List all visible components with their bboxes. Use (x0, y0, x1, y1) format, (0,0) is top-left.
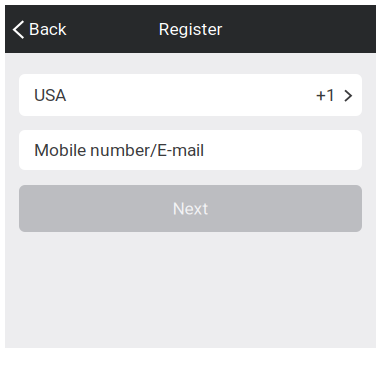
staticText: +1 (316, 85, 336, 105)
button[interactable]: USA (19, 74, 362, 116)
staticText: USA (34, 85, 66, 105)
staticText: Register (158, 19, 222, 39)
button[interactable]: Mobile number/E-mail (19, 130, 362, 170)
staticText: Mobile number/E-mail (34, 140, 204, 160)
button[interactable]: Next (19, 185, 362, 232)
staticText: Back (29, 19, 67, 39)
button[interactable]: Back (5, 5, 77, 53)
staticText: Next (172, 198, 208, 219)
